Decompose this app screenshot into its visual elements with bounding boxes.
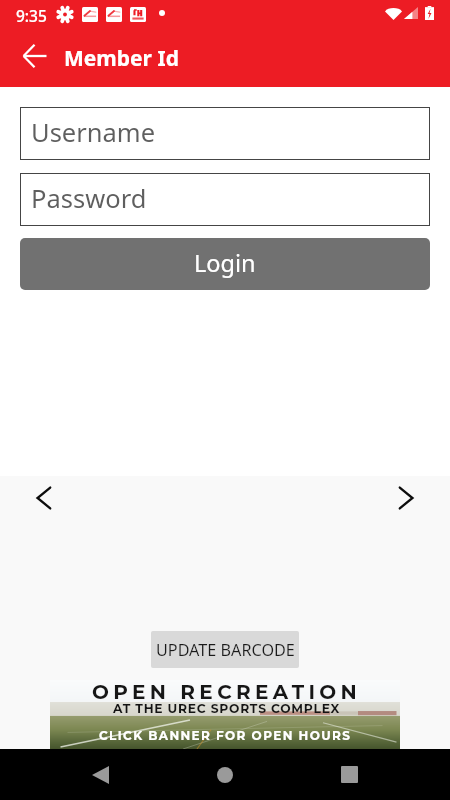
button[interactable]: Previous xyxy=(24,478,64,518)
button[interactable]: Home xyxy=(200,749,250,800)
staticText: AT THE UREC SPORTS COMPLEX xyxy=(113,701,341,716)
button[interactable]: Next xyxy=(386,478,426,518)
staticText: CLICK BANNER FOR OPEN HOURS xyxy=(99,728,352,743)
staticText: Password xyxy=(31,181,147,216)
button[interactable]: Password xyxy=(20,173,430,226)
staticText: Username xyxy=(31,115,156,150)
staticText: OPEN RECREATION xyxy=(92,680,362,704)
staticText: 9:35 xyxy=(16,5,47,26)
button[interactable]: Login xyxy=(20,238,430,290)
button[interactable]: UPDATE BARCODE xyxy=(151,631,299,668)
staticText: Login xyxy=(194,247,256,279)
button[interactable]: OPEN RECREATION xyxy=(50,680,400,749)
button[interactable]: Back xyxy=(75,749,125,800)
staticText: Member Id xyxy=(64,44,179,73)
staticText: UPDATE BARCODE xyxy=(156,639,295,661)
button[interactable]: Back xyxy=(11,32,59,80)
button[interactable]: Username xyxy=(20,107,430,160)
button[interactable]: Recent apps xyxy=(324,749,374,800)
